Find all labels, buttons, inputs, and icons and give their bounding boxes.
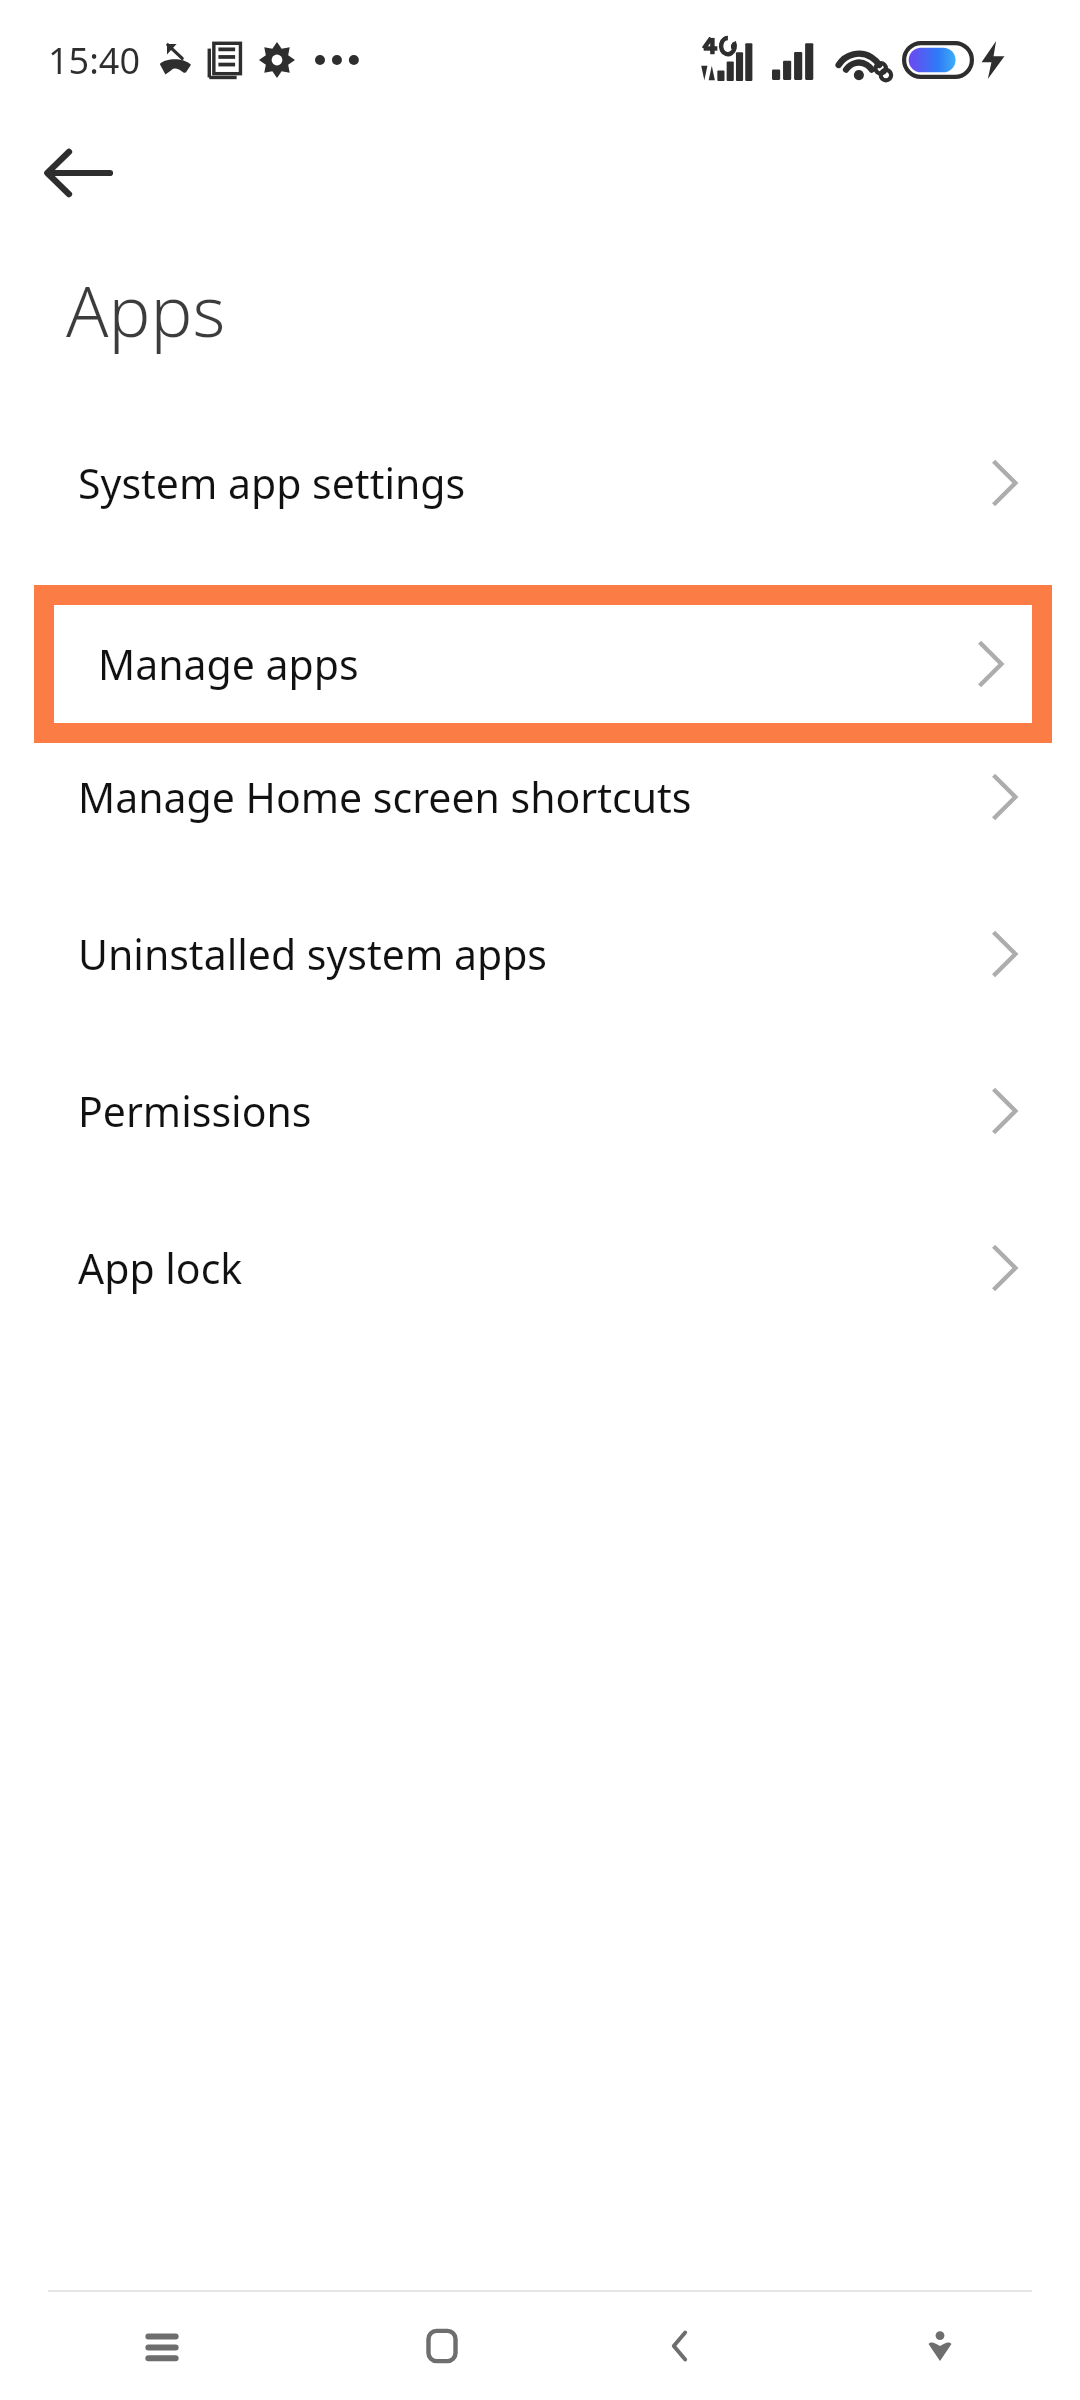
button[interactable]: Recent apps bbox=[0, 2292, 323, 2400]
staticText: Permissions bbox=[78, 1083, 992, 1139]
staticText: Manage apps bbox=[78, 612, 992, 668]
staticText: System app settings bbox=[78, 455, 992, 511]
button[interactable]: Back bbox=[561, 2292, 799, 2400]
staticText: Manage apps bbox=[98, 636, 978, 692]
button[interactable]: Permissions bbox=[0, 1032, 1080, 1189]
staticText: Uninstalled system apps bbox=[78, 926, 992, 982]
staticText: 15:40 bbox=[48, 36, 141, 85]
button[interactable]: Manage Home screen shortcuts bbox=[0, 718, 1080, 875]
button[interactable]: Back bbox=[30, 125, 126, 221]
staticText: Manage Home screen shortcuts bbox=[78, 769, 992, 825]
button[interactable]: Manage apps bbox=[0, 561, 1080, 718]
button[interactable]: Home bbox=[323, 2292, 561, 2400]
button[interactable]: One-handed mode bbox=[799, 2292, 1080, 2400]
button[interactable]: Manage apps bbox=[54, 605, 1032, 723]
button[interactable]: Uninstalled system apps bbox=[0, 875, 1080, 1032]
staticText: App lock bbox=[78, 1240, 992, 1296]
button[interactable]: App lock bbox=[0, 1189, 1080, 1346]
button[interactable]: System app settings bbox=[0, 404, 1080, 561]
staticText: Apps bbox=[66, 262, 226, 357]
